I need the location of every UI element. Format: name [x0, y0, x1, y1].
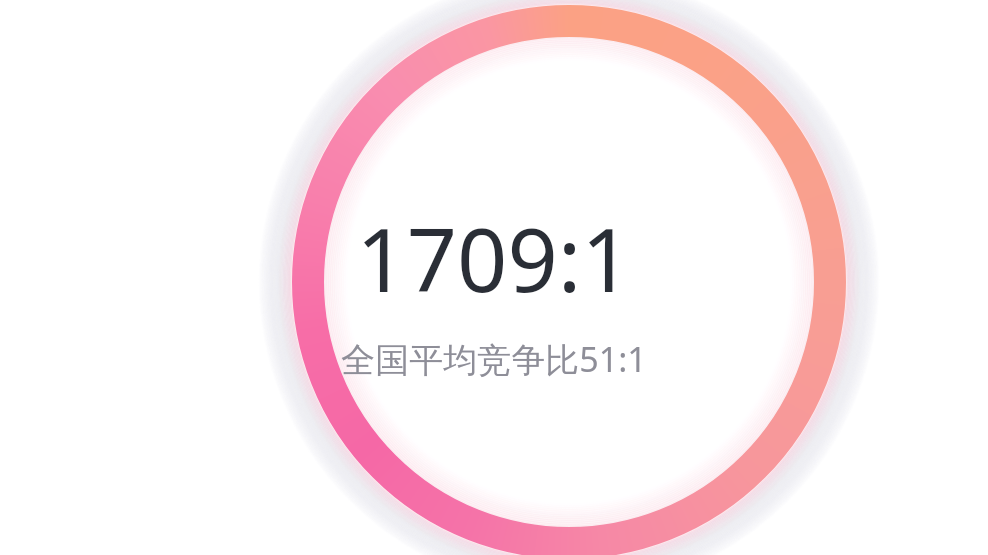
- staticText: 1709:1: [356, 198, 632, 318]
- other: Competition ratio gauge: [0, 0, 988, 555]
- staticText: 全国平均竞争比51:1: [341, 336, 647, 382]
